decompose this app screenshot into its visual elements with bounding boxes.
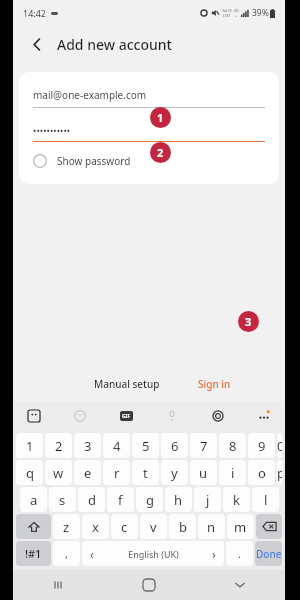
button[interactable]: Home	[103, 570, 194, 600]
button[interactable]: 6	[161, 433, 188, 458]
button[interactable]: Recents	[13, 570, 103, 600]
staticText: 3	[84, 437, 92, 455]
staticText: g	[146, 491, 154, 509]
button[interactable]: v	[140, 514, 167, 539]
button[interactable]: s	[49, 487, 76, 512]
button[interactable]: Sign in	[192, 373, 237, 395]
button[interactable]: 9	[248, 433, 275, 458]
button[interactable]: a	[20, 487, 47, 512]
staticText: x	[92, 518, 99, 536]
button[interactable]: e	[74, 460, 101, 485]
staticText: Sign in	[198, 377, 231, 391]
button[interactable]: Back	[25, 32, 49, 56]
button[interactable]: 1	[16, 433, 43, 458]
staticText: q	[26, 464, 34, 482]
staticText: n	[207, 518, 216, 536]
button[interactable]: 8	[219, 433, 246, 458]
staticText: GIF	[122, 413, 131, 420]
staticText: v	[150, 518, 157, 536]
button[interactable]: q	[16, 460, 43, 485]
button[interactable]: l	[252, 487, 279, 512]
staticText: •••••••••••	[33, 124, 71, 136]
staticText: VoLTE	[222, 8, 232, 13]
button[interactable]: Manual setup	[88, 373, 166, 395]
staticText: z	[63, 518, 70, 536]
staticText: Show password	[57, 154, 131, 168]
button[interactable]: y	[161, 460, 188, 485]
button[interactable]: t	[132, 460, 159, 485]
staticText: f	[118, 491, 123, 509]
button[interactable]: •••••••••••	[33, 124, 265, 142]
staticText: 9	[258, 437, 266, 455]
button[interactable]: GIF	[115, 405, 137, 427]
button[interactable]: d	[78, 487, 105, 512]
staticText: ,	[65, 546, 68, 561]
button[interactable]	[16, 514, 51, 539]
button[interactable]: Emoji	[69, 405, 91, 427]
staticText: 2	[157, 145, 164, 160]
button[interactable]: Done	[255, 541, 282, 566]
button[interactable]: p	[277, 460, 282, 485]
button[interactable]: ,	[53, 541, 80, 566]
staticText: u	[199, 464, 208, 482]
button[interactable]: h	[165, 487, 192, 512]
staticText: Manual setup	[94, 377, 160, 391]
staticText: 5	[142, 437, 150, 455]
staticText: a	[30, 491, 38, 509]
button[interactable]: Settings	[207, 405, 229, 427]
staticText: r	[114, 464, 120, 482]
staticText: h	[174, 491, 183, 509]
button[interactable]: 3	[74, 433, 101, 458]
button[interactable]: ‹	[82, 541, 224, 566]
button[interactable]: z	[53, 514, 80, 539]
button[interactable]: u	[190, 460, 217, 485]
button[interactable]	[256, 514, 282, 539]
staticText: mail@one-example.com	[33, 88, 147, 102]
staticText: l	[264, 491, 268, 509]
button[interactable]: 2	[45, 433, 72, 458]
staticText: 14:42	[23, 7, 47, 19]
staticText: 39%	[252, 7, 269, 19]
button[interactable]: 7	[190, 433, 217, 458]
button[interactable]: !#1	[16, 541, 51, 566]
button[interactable]: k	[223, 487, 250, 512]
button[interactable]: c	[111, 514, 138, 539]
button[interactable]: g	[136, 487, 163, 512]
staticText: 7	[200, 437, 208, 455]
button[interactable]: Stickers	[23, 405, 45, 427]
staticText: 4G	[234, 8, 239, 13]
button[interactable]: 4	[103, 433, 130, 458]
button[interactable]: Show password	[33, 154, 265, 168]
button[interactable]: o	[248, 460, 275, 485]
staticText: y	[171, 464, 178, 482]
button[interactable]: 0	[277, 433, 282, 458]
staticText: 6	[171, 437, 179, 455]
button[interactable]: Voice input	[161, 405, 183, 427]
staticText: 3	[245, 314, 252, 329]
staticText: d	[88, 491, 96, 509]
button[interactable]: mail@one-example.com	[33, 88, 265, 108]
button[interactable]: j	[194, 487, 221, 512]
button[interactable]: More options	[253, 405, 275, 427]
staticText: t	[143, 464, 148, 482]
staticText: j	[206, 491, 210, 509]
staticText: k	[233, 491, 240, 509]
staticText: .	[238, 546, 241, 561]
staticText: +	[235, 13, 238, 18]
button[interactable]: 5	[132, 433, 159, 458]
button[interactable]: .	[226, 541, 253, 566]
staticText: ‹	[90, 546, 94, 562]
staticText: w	[53, 464, 64, 482]
button[interactable]: i	[219, 460, 246, 485]
button[interactable]: x	[82, 514, 109, 539]
button[interactable]: Back	[194, 570, 285, 600]
staticText: LTE1	[223, 13, 231, 18]
button[interactable]: b	[169, 514, 196, 539]
staticText: s	[59, 491, 66, 509]
staticText: p	[277, 464, 282, 482]
button[interactable]: r	[103, 460, 130, 485]
button[interactable]: w	[45, 460, 72, 485]
button[interactable]: m	[227, 514, 254, 539]
button[interactable]: n	[198, 514, 225, 539]
button[interactable]: f	[107, 487, 134, 512]
